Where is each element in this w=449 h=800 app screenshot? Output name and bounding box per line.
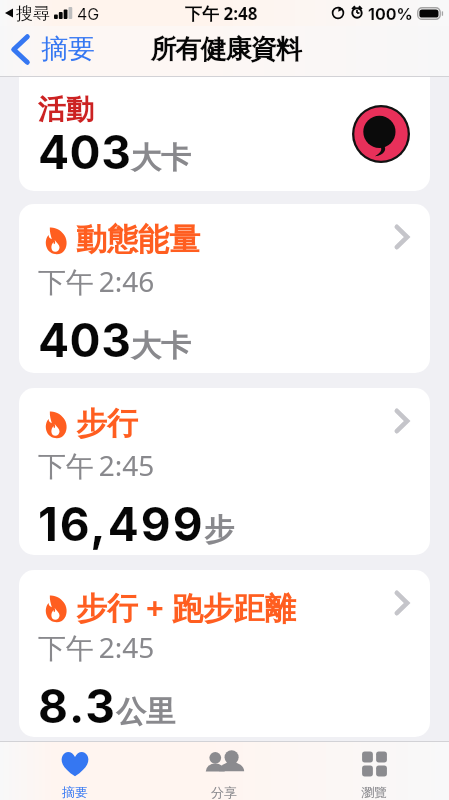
staticText: 4G (77, 4, 100, 23)
staticText: 步行 + 跑步距離 (76, 586, 296, 628)
staticText: 所有健康資料 (151, 33, 301, 66)
staticText: 動態能量 (76, 220, 200, 259)
button[interactable]: 動態能量 (19, 204, 430, 373)
staticText: 403 (38, 312, 132, 368)
staticText: 大卡 (131, 327, 191, 365)
staticText: 步行 (76, 404, 138, 443)
button[interactable]: 步行 (19, 388, 430, 555)
staticText: 8.3 (38, 678, 117, 734)
staticText: 下午 2:48 (185, 2, 258, 25)
button[interactable]: 分享 (149, 742, 299, 800)
staticText: 大卡 (131, 139, 191, 177)
staticText: 摘要 (41, 32, 95, 66)
staticText: 搜尋 (16, 3, 50, 24)
staticText: 步 (204, 511, 234, 549)
staticText: 下午 2:45 (38, 446, 155, 484)
other: Rotation lock (331, 6, 345, 20)
button[interactable]: 活動 (19, 77, 430, 191)
other: Back (11, 34, 30, 65)
other: Show details (394, 224, 410, 250)
staticText: 瀏覽 (361, 784, 387, 800)
button[interactable]: 步行 + 跑步距離 (19, 570, 430, 737)
staticText: 摘要 (62, 784, 88, 800)
staticText: 403 (38, 124, 132, 180)
staticText: 分享 (211, 784, 237, 800)
button[interactable]: 摘要 (0, 742, 149, 800)
staticText: 下午 2:45 (38, 628, 155, 666)
staticText: 下午 2:46 (38, 262, 155, 300)
other: Show details (394, 408, 410, 434)
staticText: 16,499 (38, 496, 205, 552)
button[interactable]: 瀏覽 (299, 742, 449, 800)
staticText: 公里 (116, 693, 176, 731)
staticText: 活動 (38, 92, 94, 127)
other: Alarm (350, 6, 364, 20)
button[interactable]: Back (0, 26, 105, 77)
other: Show details (394, 590, 410, 616)
staticText: 100% (368, 4, 413, 23)
